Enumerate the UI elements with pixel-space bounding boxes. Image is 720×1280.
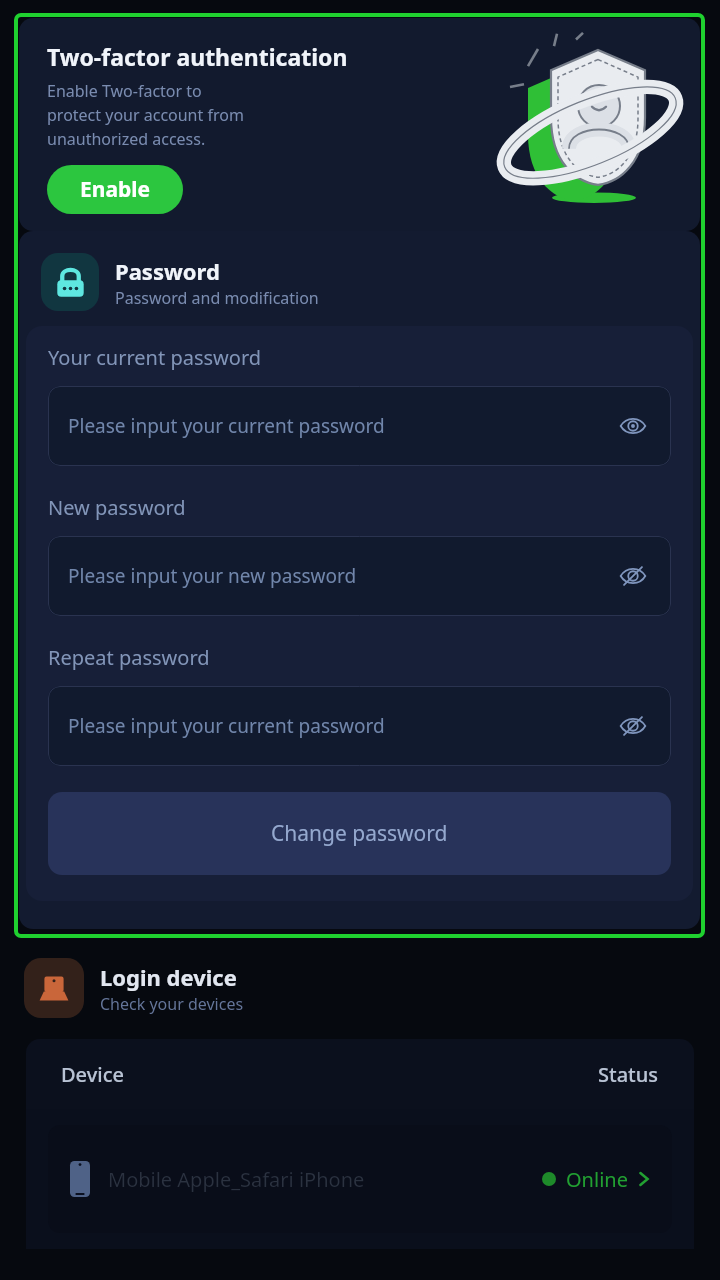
button[interactable]: Hide password <box>615 408 651 444</box>
button[interactable]: Mobile Apple_Safari iPhone <box>48 1125 672 1233</box>
button[interactable]: Please input your current password <box>48 386 671 466</box>
staticText: New password <box>48 494 186 521</box>
staticText: Login device <box>100 962 237 992</box>
button[interactable]: Show password <box>615 558 651 594</box>
button[interactable]: Change password <box>48 792 671 875</box>
staticText: Two-factor authentication <box>47 41 348 72</box>
staticText: Status <box>598 1061 659 1088</box>
staticText: Please input your current password <box>68 413 615 439</box>
staticText: Change password <box>271 819 448 848</box>
staticText: protect your account from <box>47 104 244 126</box>
staticText: Enable Two-factor to <box>47 80 202 102</box>
staticText: unauthorized access. <box>47 128 206 150</box>
staticText: Password and modification <box>115 287 319 309</box>
staticText: Password <box>115 256 220 286</box>
staticText: Device <box>61 1061 124 1088</box>
button[interactable]: Show password <box>615 708 651 744</box>
button[interactable]: Login device <box>24 958 720 1018</box>
staticText: Please input your new password <box>68 563 615 589</box>
button[interactable]: Please input your new password <box>48 536 671 616</box>
staticText: Online <box>566 1166 628 1193</box>
staticText: Mobile Apple_Safari iPhone <box>108 1166 365 1193</box>
staticText: Check your devices <box>100 993 244 1015</box>
staticText: Your current password <box>48 344 262 371</box>
staticText: Enable <box>80 175 151 204</box>
button[interactable]: Password <box>41 253 700 311</box>
staticText: Repeat password <box>48 644 210 671</box>
staticText: Please input your current password <box>68 713 615 739</box>
button[interactable]: Enable <box>47 165 183 214</box>
button[interactable]: Please input your current password <box>48 686 671 766</box>
